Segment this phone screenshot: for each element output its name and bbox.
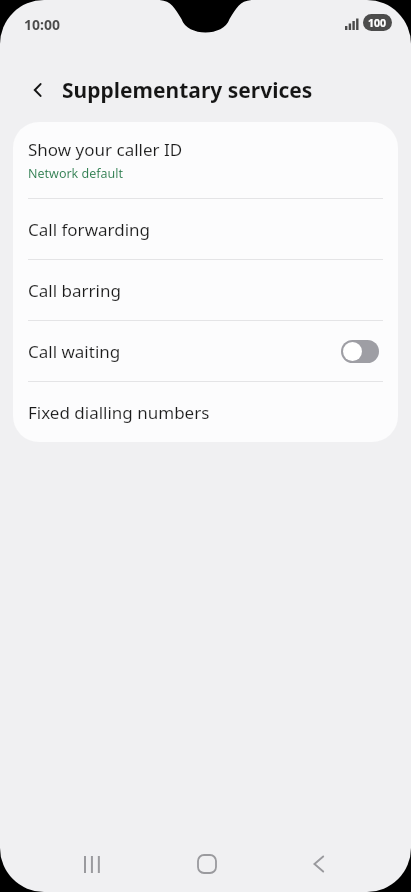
staticText: Call forwarding (28, 218, 151, 241)
staticText: Supplementary services (62, 76, 313, 105)
button[interactable]: Call waiting (13, 321, 398, 381)
button[interactable]: Recent apps (68, 840, 116, 888)
button[interactable]: Call barring (13, 260, 398, 320)
button[interactable]: Call forwarding (13, 199, 398, 259)
staticText: 10:00 (24, 15, 60, 34)
button[interactable]: Call waiting toggle (341, 340, 379, 363)
staticText: Network default (28, 165, 124, 182)
button[interactable]: Show your caller ID (13, 122, 398, 198)
staticText: Call barring (28, 279, 121, 302)
button[interactable]: Back (295, 840, 343, 888)
button[interactable]: Home (183, 840, 231, 888)
staticText: Show your caller ID (28, 138, 183, 161)
staticText: Fixed dialling numbers (28, 401, 210, 424)
staticText: Call waiting (28, 340, 341, 363)
button[interactable]: Back (20, 72, 56, 108)
button[interactable]: Fixed dialling numbers (13, 382, 398, 442)
staticText: 100 (368, 16, 387, 30)
